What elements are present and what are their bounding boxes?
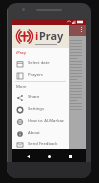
staticText: Select date <box>28 60 50 66</box>
staticText: Share <box>28 94 40 100</box>
staticText: i <box>35 28 39 43</box>
button[interactable]: i <box>12 25 69 48</box>
staticText: Prayers <box>28 72 43 78</box>
staticText: Pray <box>39 28 64 43</box>
button[interactable]: Home <box>44 151 54 161</box>
button[interactable]: Select date <box>12 57 69 69</box>
button[interactable]: How to: Al-Markaz prayer <box>12 115 69 127</box>
button[interactable]: More options <box>79 27 83 36</box>
staticText: Send Feedback <box>28 141 58 147</box>
staticText: Settings <box>28 106 44 112</box>
button[interactable]: Settings <box>12 103 69 115</box>
button[interactable]: Prayers <box>12 69 69 81</box>
button[interactable]: Recent apps <box>65 151 75 161</box>
button[interactable]: Send Feedback <box>12 139 69 149</box>
staticText: More <box>16 84 27 90</box>
staticText: How to: Al-Markaz prayer <box>28 118 69 124</box>
button[interactable]: Back <box>23 151 33 161</box>
staticText: iPray <box>16 50 26 56</box>
button[interactable]: About <box>12 127 69 139</box>
staticText: About <box>28 130 40 136</box>
button[interactable]: Share <box>12 91 69 103</box>
